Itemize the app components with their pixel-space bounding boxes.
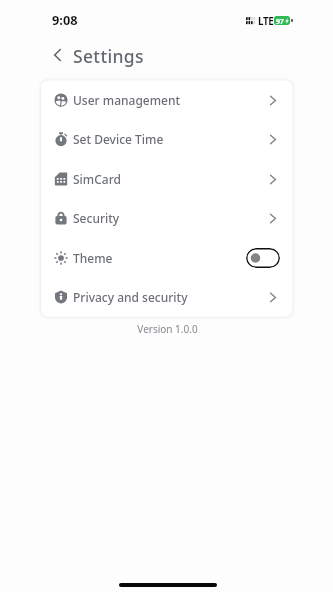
staticText: Security — [73, 210, 120, 226]
staticText: SimCard — [73, 171, 121, 187]
staticText: Privacy and security — [73, 289, 188, 305]
button[interactable]: Back — [45, 43, 69, 67]
button[interactable]: Set Device Time — [41, 119, 293, 158]
staticText: User management — [73, 92, 181, 108]
staticText: 97 — [276, 17, 284, 25]
button[interactable]: Privacy and security — [41, 277, 293, 316]
button[interactable]: Theme toggle — [246, 248, 280, 268]
staticText: 9:08 — [52, 11, 78, 28]
button[interactable]: User management — [41, 80, 293, 119]
staticText: Theme — [73, 250, 113, 266]
staticText: LTE — [258, 15, 274, 28]
button[interactable]: SimCard — [41, 159, 293, 198]
button[interactable]: Theme — [41, 238, 293, 277]
button[interactable]: Security — [41, 198, 293, 237]
staticText: Version 1.0.0 — [1, 322, 333, 336]
staticText: Set Device Time — [73, 131, 164, 147]
staticText: Settings — [73, 44, 144, 68]
